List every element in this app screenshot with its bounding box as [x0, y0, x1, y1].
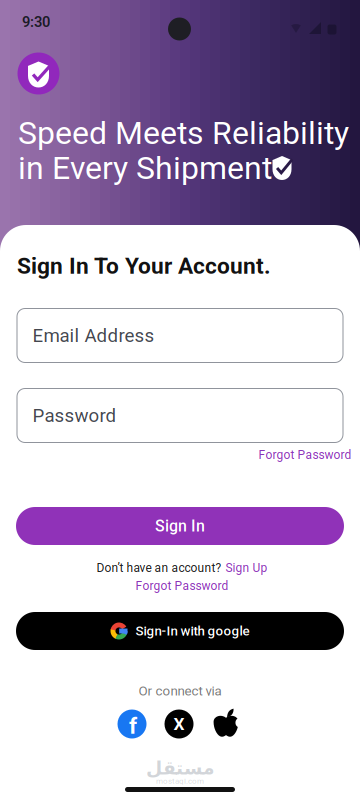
staticText: مستقل [145, 757, 214, 779]
staticText: Don’t have an account? [96, 561, 221, 575]
button[interactable]: Sign In [16, 507, 344, 545]
staticText: Forgot Password [258, 448, 351, 462]
staticText: Sign In To Your Account. [17, 253, 271, 279]
button[interactable]: Forgot Password [258, 448, 351, 462]
staticText: Email Address [32, 325, 154, 346]
staticText: Sign In [155, 517, 205, 535]
staticText: mostaql.com [156, 776, 204, 785]
button[interactable]: Sign in with Apple [212, 710, 240, 738]
button[interactable]: Email Address [16, 308, 343, 363]
staticText: 9:30 [22, 14, 50, 30]
button[interactable]: Sign-In with google [16, 612, 344, 650]
staticText: Forgot Password [135, 579, 228, 593]
staticText: X [173, 714, 184, 734]
staticText: Or connect via [138, 683, 221, 699]
staticText: Speed Meets Reliability [18, 115, 349, 151]
staticText: Sign Up [225, 561, 267, 575]
button[interactable]: Forgot Password [135, 579, 228, 593]
button[interactable]: Sign in with Facebook [117, 709, 146, 738]
staticText: Sign-In with google [135, 623, 249, 639]
staticText: f [129, 713, 137, 739]
button[interactable]: Sign Up [225, 561, 267, 575]
button[interactable]: Sign in with X [164, 709, 193, 738]
staticText: in Every Shipment [18, 150, 272, 186]
staticText: Password [32, 405, 116, 426]
button[interactable]: Password [16, 388, 343, 443]
